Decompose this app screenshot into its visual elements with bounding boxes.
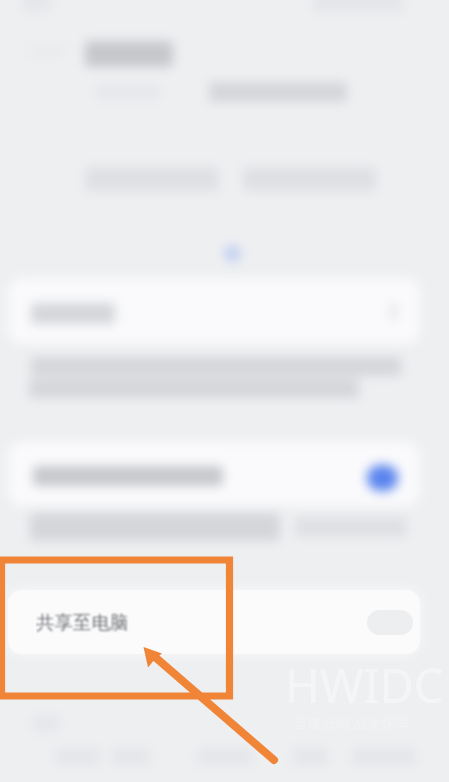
other: Highlight annotation xyxy=(0,0,449,782)
staticText: 共享至电脑 xyxy=(36,611,129,634)
button[interactable]: 共享至电脑 xyxy=(8,590,420,654)
